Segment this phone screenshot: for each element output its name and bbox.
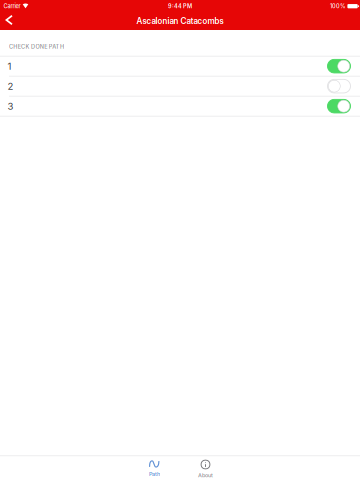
staticText: Path xyxy=(149,471,160,477)
staticText: 1 xyxy=(8,60,12,72)
button[interactable]: 2 xyxy=(0,76,360,96)
button[interactable]: Path xyxy=(132,455,176,480)
staticText: Carrier xyxy=(3,3,20,10)
button[interactable]: 1 xyxy=(0,56,360,76)
staticText: 3 xyxy=(8,100,14,112)
staticText: About xyxy=(198,472,213,478)
staticText: CHECK DONE PATH xyxy=(9,43,64,50)
staticText: 100% xyxy=(330,3,346,10)
staticText: Ascalonian Catacombs xyxy=(136,16,223,26)
button[interactable]: Back xyxy=(0,13,24,30)
staticText: 2 xyxy=(8,80,14,92)
staticText: 9:44 PM xyxy=(168,3,192,9)
button[interactable]: About xyxy=(183,455,227,480)
button[interactable]: 3 xyxy=(0,96,360,116)
